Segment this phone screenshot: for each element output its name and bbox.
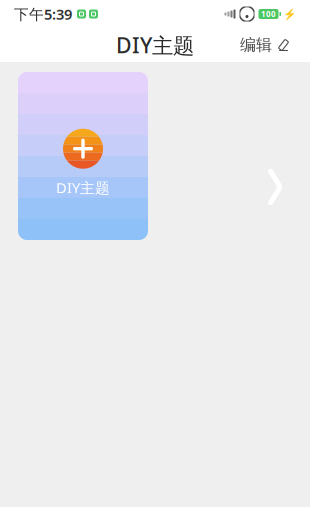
- button[interactable]: DIY主题: [18, 72, 148, 240]
- staticText: 100: [261, 9, 276, 19]
- staticText: 编辑: [240, 35, 272, 55]
- staticText: DIY主题: [56, 178, 110, 197]
- button[interactable]: 编辑: [234, 29, 296, 61]
- staticText: 下午5:39: [14, 4, 72, 24]
- staticText: DIY主题: [116, 31, 194, 59]
- button[interactable]: 下一页: [252, 158, 298, 216]
- staticText: ⚡: [283, 8, 296, 20]
